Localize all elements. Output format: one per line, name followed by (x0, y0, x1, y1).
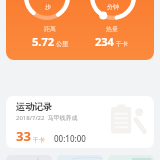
button[interactable]: 体重 (57, 155, 103, 160)
staticText: 千卡 (33, 136, 45, 144)
staticText: 千卡 (116, 40, 128, 48)
staticText: 00:10:00 (54, 133, 86, 144)
staticText: 33 (16, 127, 31, 145)
staticText: 234 (95, 34, 114, 49)
staticText: 运动记录 (16, 101, 52, 112)
button[interactable]: 步 (6, 0, 154, 60)
staticText: 公里 (56, 40, 68, 48)
staticText: 2018/7/22 马甲线养成 (16, 114, 78, 122)
button[interactable]: 运动记录 (6, 96, 154, 148)
staticText: 步 (45, 3, 51, 11)
staticText: 5.72 (32, 34, 54, 49)
button[interactable]: 步 (22, 0, 72, 22)
staticText: 热量 (106, 25, 118, 33)
staticText: 距离 (44, 25, 56, 33)
button[interactable]: 压力 (108, 155, 154, 160)
staticText: 分钟 (107, 3, 119, 11)
button[interactable]: 分钟 (88, 0, 138, 22)
staticText: 8361 (30, 0, 65, 3)
